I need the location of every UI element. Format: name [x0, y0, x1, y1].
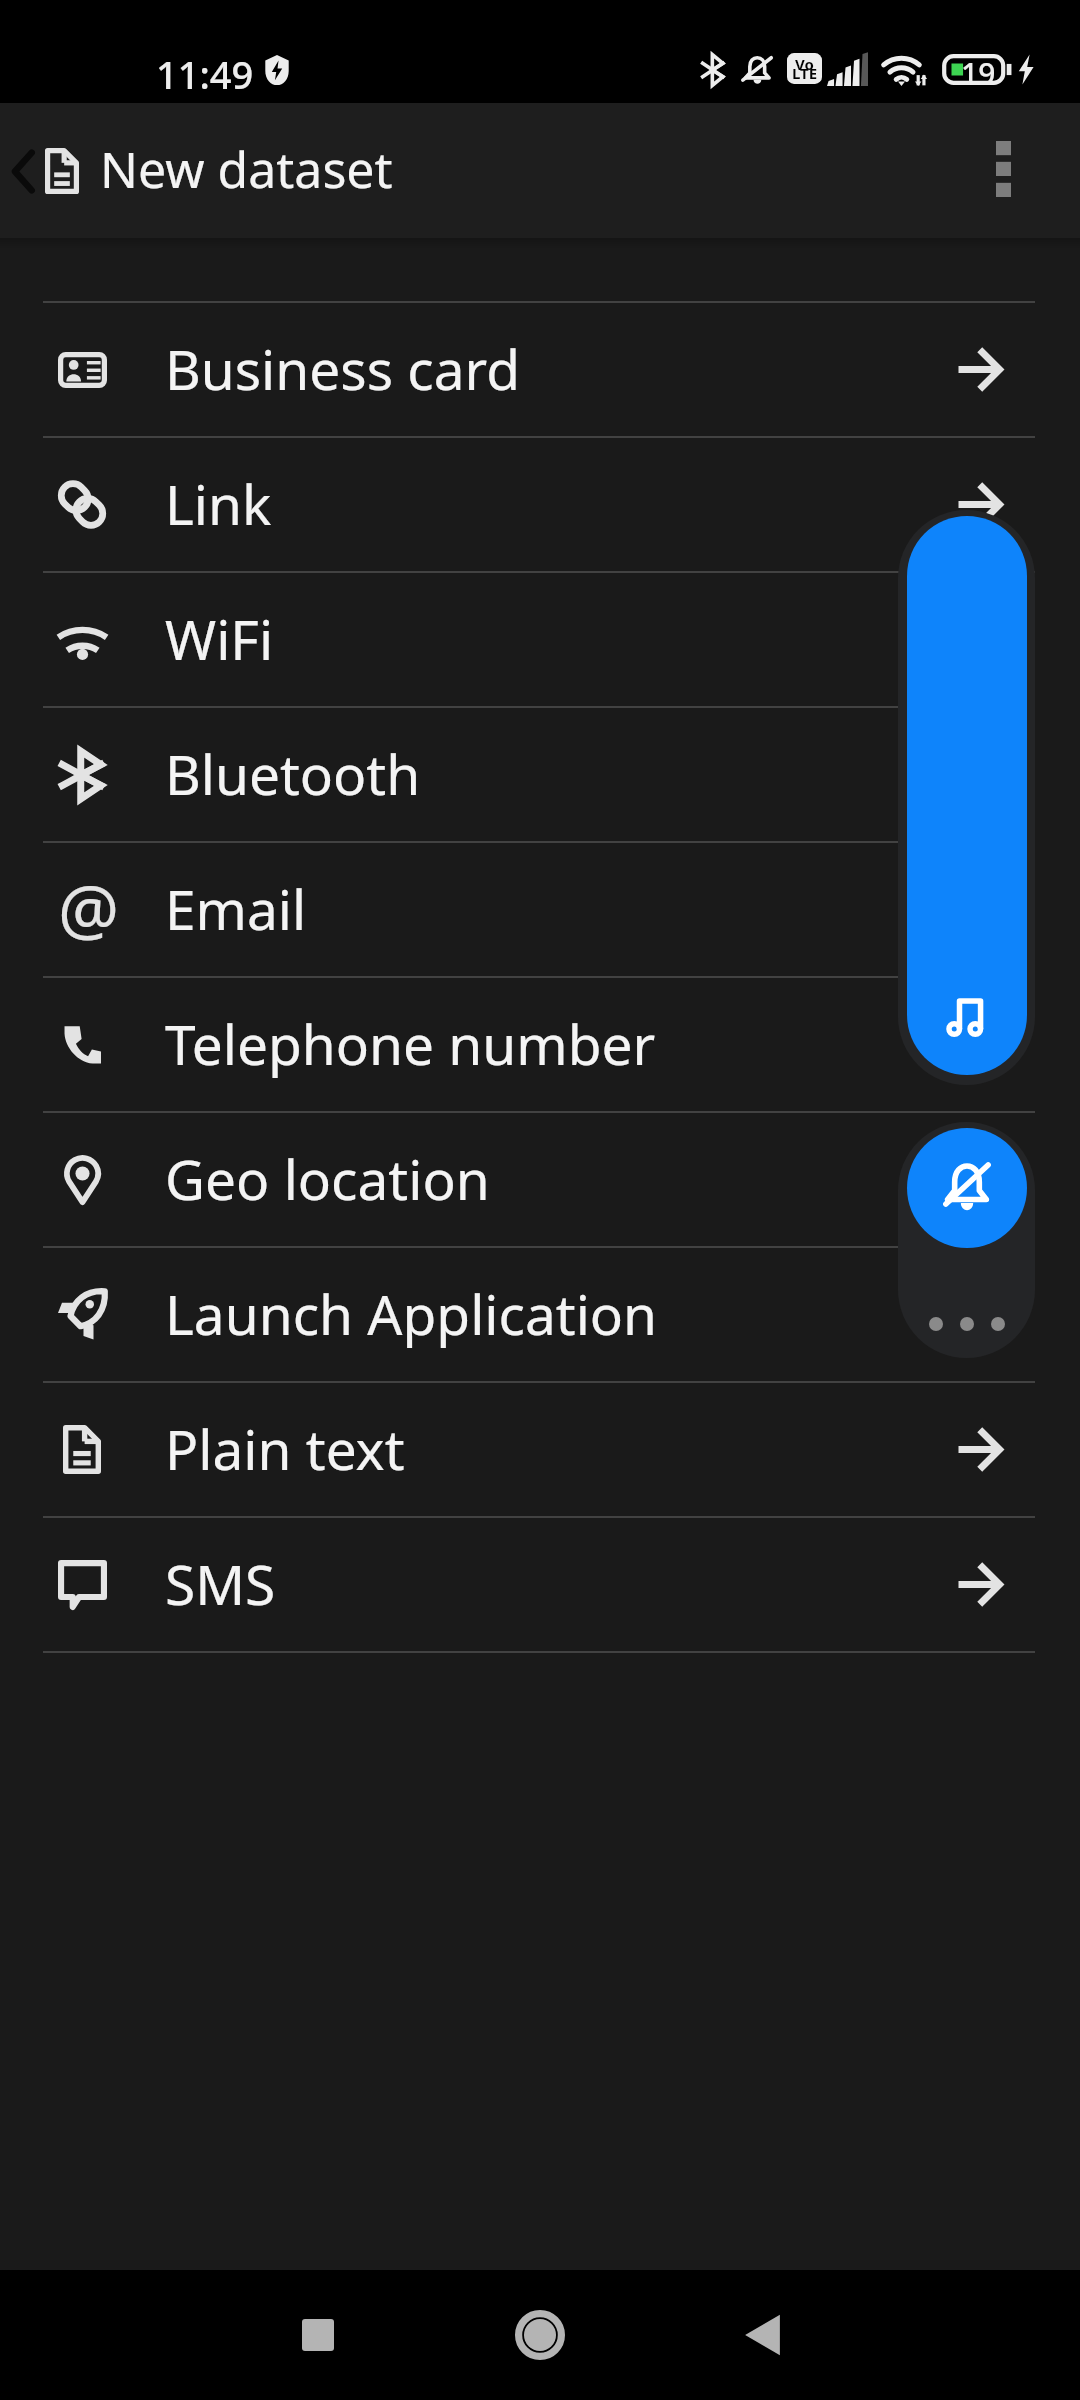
button[interactable]: WiFi	[0, 573, 1080, 706]
staticText: Plain text	[165, 1411, 405, 1486]
button[interactable]: Back	[0, 103, 44, 238]
staticText: @	[58, 861, 106, 954]
staticText: Launch Application	[165, 1276, 658, 1351]
button[interactable]: Recent apps	[250, 2270, 386, 2400]
staticText: 19	[961, 53, 996, 94]
button[interactable]: Plain text	[0, 1383, 1080, 1516]
button[interactable]: Bluetooth	[0, 708, 1080, 841]
staticText: Link	[165, 466, 272, 541]
staticText: SMS	[165, 1546, 276, 1621]
button[interactable]: @	[0, 843, 1080, 976]
staticText: Telephone number	[165, 1006, 656, 1081]
staticText: Vo	[795, 54, 814, 74]
staticText: Business card	[165, 331, 520, 406]
staticText: LTE	[792, 63, 818, 83]
button[interactable]: Telephone number	[0, 978, 1080, 1111]
staticText: Bluetooth	[165, 736, 421, 811]
button[interactable]: SMS	[0, 1518, 1080, 1651]
button[interactable]: Link	[0, 438, 1080, 571]
staticText: WiFi	[165, 601, 274, 676]
staticText: Geo location	[165, 1141, 490, 1216]
button[interactable]: Media volume	[898, 510, 1035, 1085]
button[interactable]: Geo location	[0, 1113, 1080, 1246]
staticText: 11:49	[156, 48, 254, 100]
button[interactable]: Business card	[0, 303, 1080, 436]
button[interactable]: Back	[694, 2270, 830, 2400]
button[interactable]: More options	[980, 103, 1080, 238]
staticText: New dataset	[100, 135, 393, 203]
button[interactable]: Ringer mode	[907, 1128, 1027, 1248]
staticText: Email	[165, 871, 307, 946]
button[interactable]: Launch Application	[0, 1248, 1080, 1381]
button[interactable]: More volume settings	[898, 1290, 1035, 1358]
button[interactable]: Home	[472, 2270, 608, 2400]
